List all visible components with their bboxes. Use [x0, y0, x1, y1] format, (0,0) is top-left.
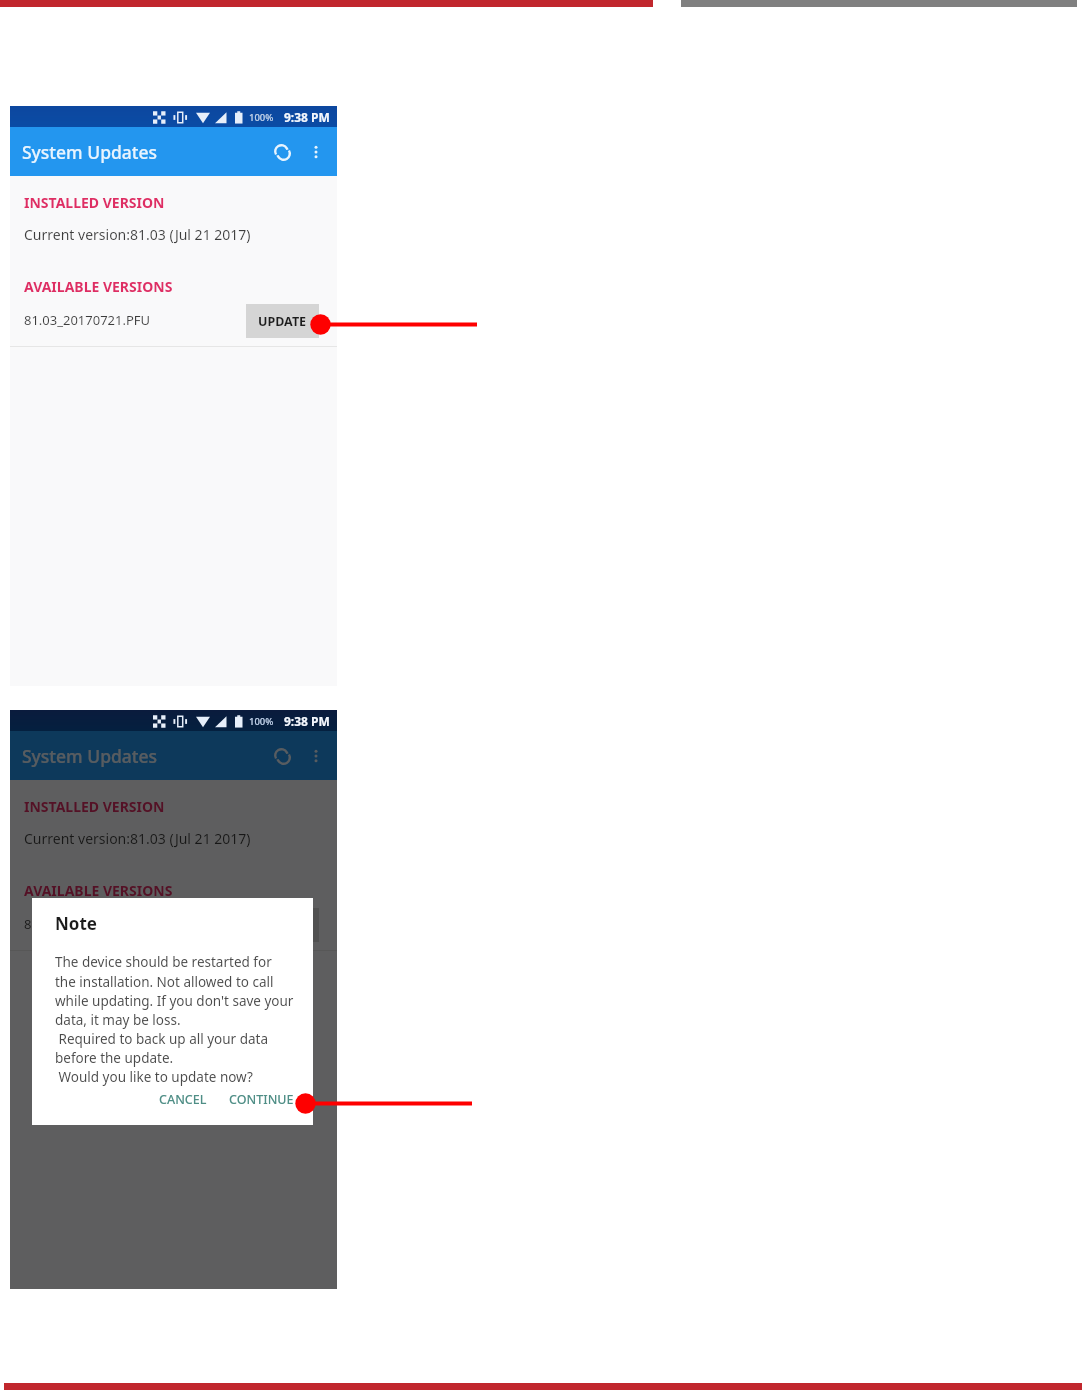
- staticText: 81.03_20170721.PFU: [24, 915, 151, 933]
- button[interactable]: CANCEL: [148, 1083, 218, 1116]
- button[interactable]: Refresh: [265, 135, 299, 169]
- staticText: 81.03_20170721.PFU: [24, 311, 151, 329]
- button[interactable]: 81.03_20170721.PFU: [10, 908, 337, 942]
- staticText: 100%: [249, 715, 274, 728]
- button[interactable]: UPDATE: [246, 908, 319, 942]
- staticText: INSTALLED VERSION: [24, 193, 165, 212]
- staticText: INSTALLED VERSION: [24, 797, 165, 816]
- staticText: 9:38 PM: [284, 713, 330, 729]
- staticText: 9:38 PM: [284, 109, 330, 125]
- button[interactable]: Refresh: [265, 739, 299, 773]
- staticText: Note: [55, 912, 97, 935]
- button[interactable]: More options: [299, 135, 333, 169]
- staticText: UPDATE: [258, 313, 307, 330]
- staticText: System Updates: [22, 140, 158, 164]
- staticText: 100%: [249, 715, 274, 728]
- staticText: 9:38 PM: [284, 713, 330, 729]
- button[interactable]: CONTINUE: [218, 1083, 305, 1116]
- staticText: CANCEL: [159, 1091, 207, 1108]
- staticText: The device should be restarted for the i…: [55, 953, 294, 1086]
- button[interactable]: UPDATE: [246, 304, 319, 338]
- staticText: AVAILABLE VERSIONS: [24, 277, 173, 296]
- staticText: System Updates: [22, 744, 158, 768]
- staticText: 100%: [249, 111, 274, 124]
- staticText: AVAILABLE VERSIONS: [24, 881, 173, 900]
- button[interactable]: 81.03_20170721.PFU: [10, 304, 337, 338]
- staticText: Current version:81.03 (Jul 21 2017): [24, 225, 251, 244]
- staticText: Current version:81.03 (Jul 21 2017): [24, 829, 251, 848]
- staticText: CONTINUE: [229, 1091, 294, 1108]
- button[interactable]: More options: [299, 739, 333, 773]
